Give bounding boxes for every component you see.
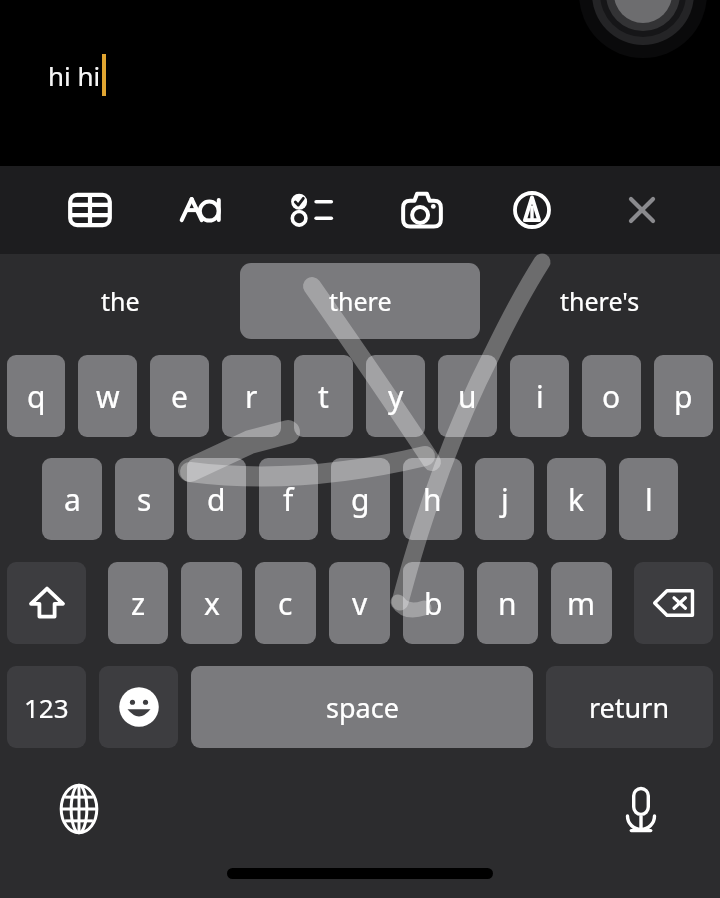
staticText: g xyxy=(351,479,370,520)
staticText: u xyxy=(458,376,477,417)
button[interactable]: u xyxy=(438,355,497,437)
button[interactable]: space xyxy=(191,666,533,748)
staticText: m xyxy=(567,583,596,624)
button[interactable]: there's xyxy=(480,263,720,339)
button[interactable]: a xyxy=(42,458,102,540)
button[interactable]: r xyxy=(222,355,281,437)
staticText: e xyxy=(171,376,188,417)
staticText: v xyxy=(352,583,368,624)
button[interactable]: l xyxy=(619,458,678,540)
staticText: space xyxy=(326,689,399,726)
staticText: f xyxy=(283,479,294,520)
staticText: a xyxy=(64,479,81,520)
staticText: r xyxy=(245,376,258,417)
staticText: there's xyxy=(560,284,640,318)
button[interactable]: w xyxy=(78,355,137,437)
staticText: i xyxy=(536,376,544,417)
button[interactable]: y xyxy=(366,355,425,437)
staticText: o xyxy=(602,376,621,417)
button[interactable]: Change keyboard language xyxy=(46,776,112,842)
staticText: k xyxy=(568,479,585,520)
staticText: q xyxy=(27,376,46,417)
button[interactable]: Dictation xyxy=(608,776,674,842)
staticText: w xyxy=(96,376,120,417)
button[interactable]: Camera xyxy=(390,178,454,242)
button[interactable]: g xyxy=(331,458,390,540)
button[interactable]: k xyxy=(547,458,606,540)
button[interactable]: m xyxy=(551,562,612,644)
button[interactable]: Backspace xyxy=(634,562,713,644)
button[interactable]: f xyxy=(259,458,318,540)
staticText: b xyxy=(424,583,443,624)
button[interactable]: x xyxy=(181,562,242,644)
staticText: there xyxy=(329,284,392,318)
button[interactable]: b xyxy=(403,562,464,644)
staticText: j xyxy=(501,479,509,520)
button[interactable]: Close keyboard xyxy=(610,178,674,242)
button[interactable]: e xyxy=(150,355,209,437)
button[interactable]: there xyxy=(240,263,480,339)
staticText: the xyxy=(101,284,140,318)
button[interactable]: i xyxy=(510,355,569,437)
button[interactable]: z xyxy=(108,562,168,644)
staticText: l xyxy=(645,479,653,520)
button[interactable]: h xyxy=(403,458,462,540)
button[interactable]: Markup xyxy=(500,178,564,242)
staticText: return xyxy=(589,689,670,726)
staticText: hi hi xyxy=(48,58,101,93)
button[interactable]: s xyxy=(115,458,174,540)
button[interactable]: d xyxy=(187,458,246,540)
button[interactable]: v xyxy=(329,562,390,644)
staticText: h xyxy=(423,479,442,520)
staticText: d xyxy=(207,479,226,520)
button[interactable]: t xyxy=(294,355,353,437)
button[interactable]: the xyxy=(0,263,240,339)
button[interactable]: n xyxy=(477,562,538,644)
staticText: c xyxy=(278,583,293,624)
button[interactable]: Text formatting xyxy=(169,178,233,242)
button[interactable]: Emoji keyboard xyxy=(99,666,178,748)
staticText: x xyxy=(204,583,220,624)
button[interactable]: Shift xyxy=(7,562,86,644)
staticText: z xyxy=(131,583,146,624)
staticText: s xyxy=(137,479,152,520)
button[interactable]: p xyxy=(654,355,713,437)
staticText: t xyxy=(318,376,329,417)
button[interactable]: 123 xyxy=(7,666,86,748)
button[interactable]: c xyxy=(255,562,316,644)
staticText: y xyxy=(388,376,404,417)
button[interactable]: q xyxy=(7,355,65,437)
button[interactable]: return xyxy=(546,666,713,748)
staticText: n xyxy=(498,583,517,624)
button[interactable]: Table xyxy=(58,178,122,242)
button[interactable]: o xyxy=(582,355,641,437)
staticText: 123 xyxy=(24,690,69,725)
button[interactable]: j xyxy=(475,458,534,540)
staticText: p xyxy=(674,376,693,417)
button[interactable]: Checklist xyxy=(280,178,344,242)
